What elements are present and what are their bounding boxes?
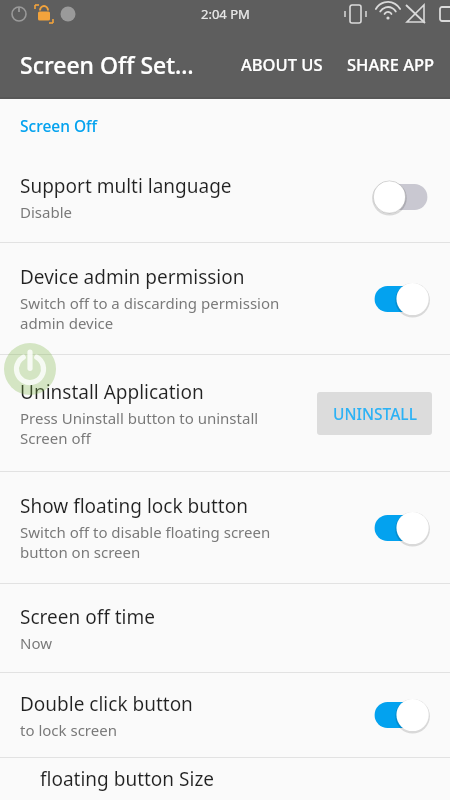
staticText: Show floating lock button — [20, 493, 248, 519]
staticText: Press Uninstall button to uninstall Scre… — [20, 408, 259, 448]
staticText: Device admin permission — [20, 264, 245, 290]
staticText: Screen Off Set… — [20, 49, 194, 80]
staticText: UNINSTALL — [333, 403, 417, 424]
button[interactable]: Screen off time — [0, 584, 450, 672]
button[interactable]: Support multi language — [0, 152, 450, 242]
button[interactable]: Floating lock button — [4, 343, 56, 395]
staticText: Disable — [20, 202, 72, 222]
staticText: ABOUT US — [241, 53, 323, 75]
button[interactable]: SHARE APP — [333, 41, 450, 87]
staticText: floating button Size — [40, 766, 215, 792]
staticText: Screen Off — [20, 115, 98, 136]
staticText: Now — [20, 633, 52, 653]
button[interactable]: Toggle on — [370, 508, 432, 548]
button[interactable]: Device admin permission — [0, 243, 450, 354]
staticText: 2:04 PM — [201, 5, 250, 23]
staticText: SHARE APP — [347, 53, 435, 75]
button[interactable]: Show floating lock button — [0, 472, 450, 583]
staticText: Support multi language — [20, 173, 232, 199]
staticText: to lock screen — [20, 720, 117, 740]
staticText: Switch off to disable floating screen bu… — [20, 522, 271, 562]
button[interactable]: Double click button — [0, 673, 450, 757]
staticText: Uninstall Application — [20, 379, 204, 405]
button[interactable]: floating button Size — [0, 758, 450, 800]
button[interactable]: Toggle on — [370, 695, 432, 735]
staticText: Double click button — [20, 691, 193, 717]
button[interactable]: UNINSTALL — [317, 392, 432, 435]
staticText: Screen off time — [20, 604, 155, 630]
button[interactable]: Toggle on — [370, 279, 432, 319]
button[interactable]: ABOUT US — [231, 41, 333, 87]
staticText: Switch off to a discarding permission ad… — [20, 293, 280, 333]
button[interactable]: Toggle off — [370, 177, 432, 217]
button[interactable]: Uninstall Application — [0, 355, 450, 471]
